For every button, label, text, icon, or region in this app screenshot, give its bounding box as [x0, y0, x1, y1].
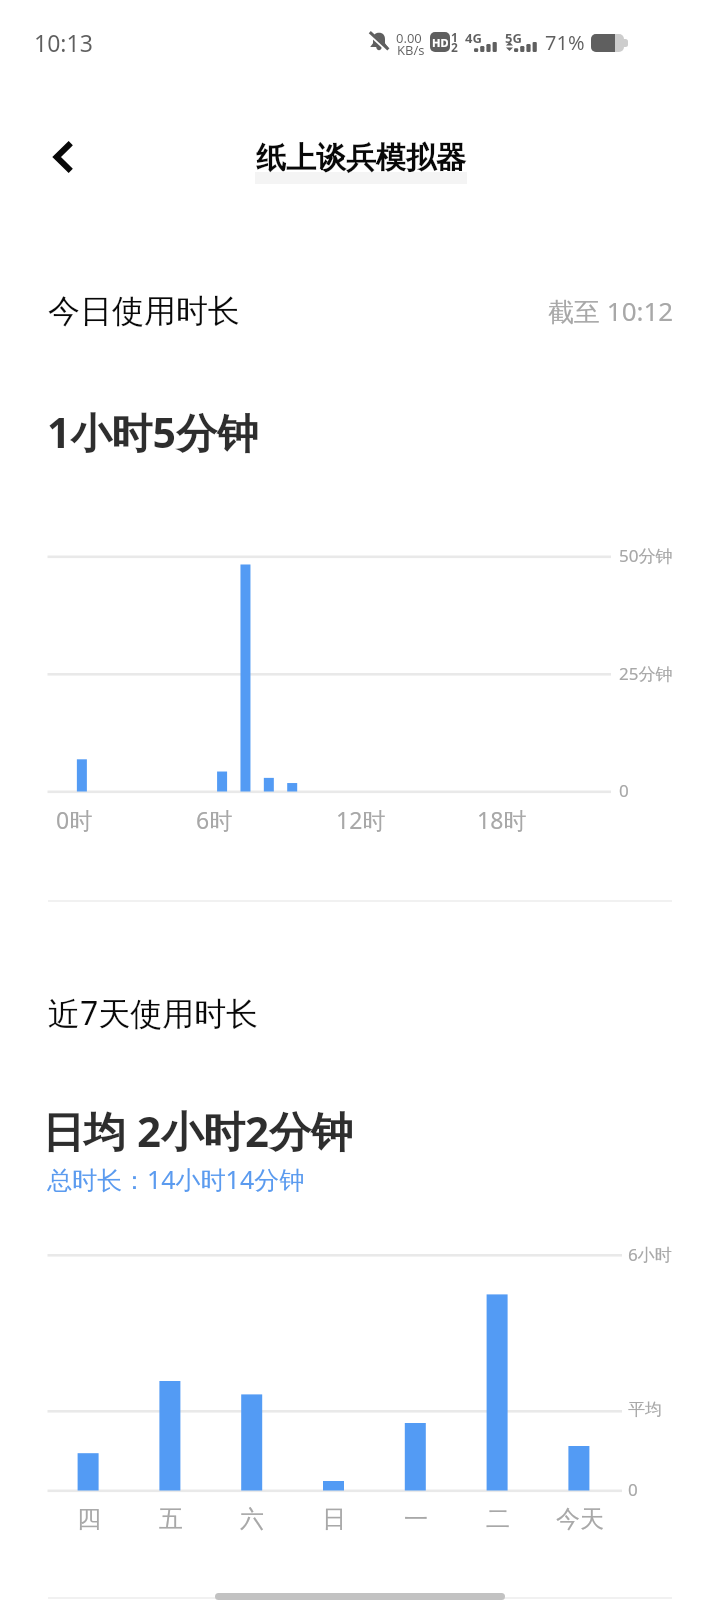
- staticText: 截至 10:12: [548, 293, 674, 329]
- staticText: 一: [404, 1504, 428, 1534]
- staticText: 四: [77, 1504, 101, 1534]
- staticText: 今日使用时长: [48, 291, 240, 331]
- staticText: 12时: [336, 804, 386, 835]
- staticText: 71%: [545, 29, 585, 56]
- staticText: 0: [619, 779, 629, 802]
- button[interactable]: Back: [28, 123, 96, 191]
- staticText: 1: [451, 29, 458, 45]
- staticText: 10:13: [34, 27, 93, 58]
- staticText: 六: [240, 1504, 264, 1534]
- staticText: KB/s: [397, 41, 425, 59]
- staticText: 今天: [556, 1504, 604, 1534]
- staticText: 平均: [628, 1399, 662, 1420]
- staticText: 纸上谈兵模拟器: [256, 139, 466, 177]
- staticText: 5G: [505, 29, 522, 47]
- staticText: 1小时5分钟: [47, 404, 258, 460]
- staticText: HD: [432, 35, 449, 50]
- staticText: 18时: [477, 804, 527, 835]
- staticText: 25分钟: [619, 662, 673, 685]
- staticText: 日: [322, 1504, 346, 1534]
- staticText: 近7天使用时长: [48, 991, 259, 1035]
- staticText: 0: [628, 1478, 638, 1501]
- staticText: 6小时: [628, 1243, 672, 1266]
- staticText: 2: [451, 39, 458, 55]
- staticText: 50分钟: [619, 544, 673, 567]
- staticText: 总时长：14小时14分钟: [47, 1162, 305, 1196]
- staticText: 日均 2小时2分钟: [42, 1102, 353, 1159]
- staticText: 4G: [465, 29, 482, 47]
- staticText: 二: [486, 1504, 510, 1534]
- staticText: 五: [159, 1504, 183, 1534]
- staticText: 6时: [196, 804, 233, 835]
- staticText: 0时: [56, 804, 93, 835]
- staticText: 0.00: [396, 29, 422, 47]
